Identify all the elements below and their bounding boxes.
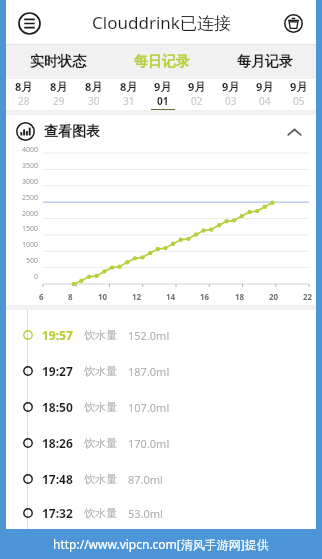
button[interactable]: 9月	[214, 79, 248, 110]
staticText: 05	[293, 94, 305, 108]
staticText: 6	[39, 291, 44, 302]
staticText: 22	[303, 291, 313, 302]
staticText: 01	[157, 94, 169, 108]
staticText: 1000	[22, 240, 39, 250]
button[interactable]: 9月	[146, 79, 180, 110]
staticText: Clouddrink已连接	[92, 11, 231, 34]
staticText: 500	[26, 256, 39, 266]
staticText: 30	[88, 94, 100, 108]
button[interactable]: 17:48	[6, 461, 316, 497]
button[interactable]: 8月	[6, 79, 41, 110]
staticText: 29	[53, 94, 65, 108]
button[interactable]: 每日记录	[110, 45, 213, 79]
staticText: 每日记录	[134, 53, 190, 71]
staticText: 18:26	[42, 435, 73, 451]
staticText: 18:50	[42, 399, 73, 415]
staticText: 53.0ml	[128, 506, 163, 521]
staticText: 8月	[15, 79, 33, 94]
staticText: 9月	[256, 79, 274, 94]
staticText: 02	[191, 94, 203, 108]
staticText: 19:57	[42, 327, 73, 343]
staticText: 0	[34, 272, 39, 282]
button[interactable]: 19:27	[6, 353, 316, 389]
staticText: 9月	[290, 79, 308, 94]
staticText: 饮水量	[84, 328, 117, 342]
staticText: 2000	[22, 209, 39, 219]
staticText: 饮水量	[84, 506, 117, 520]
staticText: 19:27	[42, 363, 73, 379]
button[interactable]: Collapse chart	[279, 117, 309, 147]
staticText: 饮水量	[84, 400, 117, 414]
staticText: 28	[18, 94, 30, 108]
button[interactable]: 查看图表	[6, 115, 316, 148]
button[interactable]: 8月	[111, 79, 146, 110]
staticText: 16	[200, 291, 210, 302]
button[interactable]: 18:26	[6, 425, 316, 461]
staticText: 87.0ml	[128, 472, 163, 487]
button[interactable]: Delete	[278, 8, 308, 38]
button[interactable]: 9月	[282, 79, 316, 110]
staticText: 8月	[120, 79, 138, 94]
button[interactable]: 19:57	[6, 317, 316, 353]
button[interactable]: 8月	[76, 79, 111, 110]
staticText: 饮水量	[84, 472, 117, 486]
button[interactable]: 9月	[180, 79, 214, 110]
staticText: http://www.vipcn.com[清风手游网]提供	[53, 536, 269, 552]
staticText: 饮水量	[84, 364, 117, 378]
staticText: 9月	[154, 79, 172, 94]
staticText: 20	[269, 291, 279, 302]
staticText: 1500	[22, 224, 39, 234]
staticText: 10	[98, 291, 108, 302]
staticText: 9月	[222, 79, 240, 94]
staticText: 9月	[188, 79, 206, 94]
staticText: 17:32	[42, 505, 73, 521]
button[interactable]: 18:50	[6, 389, 316, 425]
staticText: 152.0ml	[128, 328, 170, 343]
staticText: 3500	[22, 161, 39, 171]
staticText: 170.0ml	[128, 436, 170, 451]
staticText: 2500	[22, 193, 39, 203]
staticText: 107.0ml	[128, 400, 170, 415]
staticText: 8月	[50, 79, 68, 94]
staticText: 04	[259, 94, 271, 108]
staticText: 8月	[85, 79, 103, 94]
button[interactable]: 每月记录	[213, 45, 316, 79]
staticText: 每月记录	[237, 53, 293, 71]
staticText: 实时状态	[30, 53, 86, 71]
staticText: 17:48	[42, 471, 73, 487]
button[interactable]: 实时状态	[6, 45, 110, 79]
button[interactable]: Menu	[12, 6, 46, 40]
staticText: 查看图表	[44, 123, 100, 141]
staticText: 8	[68, 291, 73, 302]
staticText: 饮水量	[84, 436, 117, 450]
staticText: 31	[123, 94, 135, 108]
staticText: 3000	[22, 177, 39, 187]
staticText: 12	[132, 291, 142, 302]
button[interactable]: 17:32	[6, 497, 316, 529]
staticText: 14	[166, 291, 176, 302]
staticText: 18	[235, 291, 245, 302]
staticText: 4000	[22, 145, 39, 155]
button[interactable]: 9月	[248, 79, 282, 110]
staticText: 03	[225, 94, 237, 108]
staticText: 187.0ml	[128, 364, 170, 379]
button[interactable]: 8月	[41, 79, 76, 110]
